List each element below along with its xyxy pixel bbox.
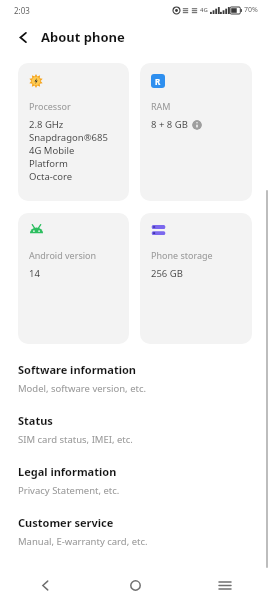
- button[interactable]: Customer service: [0, 515, 270, 566]
- staticText: About phone: [41, 28, 125, 46]
- staticText: 256 GB: [151, 267, 183, 280]
- staticText: 4G Mobile: [29, 144, 75, 157]
- staticText: Manual, E-warranty card, etc.: [18, 535, 148, 548]
- staticText: Snapdragon®685: [29, 131, 108, 144]
- button[interactable]: RAM info: [192, 120, 202, 130]
- staticText: Android version: [29, 249, 97, 261]
- button[interactable]: Recent apps: [180, 570, 270, 600]
- staticText: Phone storage: [151, 249, 213, 261]
- button[interactable]: Software information: [0, 362, 270, 413]
- button[interactable]: Android version: [18, 213, 129, 344]
- button[interactable]: Status: [0, 413, 270, 464]
- staticText: Software information: [18, 362, 136, 377]
- staticText: 2.8 GHz: [29, 118, 64, 131]
- staticText: Model, software version, etc.: [18, 382, 147, 395]
- button[interactable]: Phone storage: [140, 213, 252, 344]
- staticText: 8 + 8 GB: [151, 118, 188, 131]
- staticText: Status: [18, 413, 53, 428]
- button[interactable]: Home: [90, 570, 180, 600]
- button[interactable]: Legal information: [0, 464, 270, 515]
- staticText: Platform: [29, 157, 68, 170]
- button[interactable]: R: [140, 63, 252, 201]
- staticText: Processor: [29, 100, 71, 112]
- staticText: R: [155, 76, 161, 87]
- staticText: Octa-core: [29, 170, 73, 183]
- staticText: 2:03: [14, 5, 30, 16]
- staticText: Customer service: [18, 515, 114, 530]
- button[interactable]: Back: [10, 24, 36, 50]
- staticText: RAM: [151, 100, 171, 112]
- staticText: 4G: [200, 6, 208, 14]
- staticText: 70%: [244, 5, 258, 15]
- staticText: Legal information: [18, 464, 117, 479]
- staticText: 14: [29, 267, 40, 280]
- button[interactable]: Processor: [18, 63, 129, 201]
- staticText: SIM card status, IMEI, etc.: [18, 433, 133, 446]
- staticText: Privacy Statement, etc.: [18, 484, 120, 497]
- button[interactable]: Back: [0, 570, 90, 600]
